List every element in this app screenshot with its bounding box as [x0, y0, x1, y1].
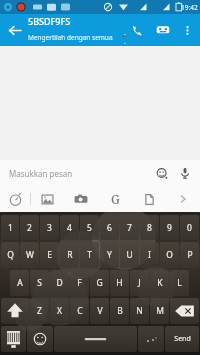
button[interactable]: J — [130, 270, 149, 296]
staticText: 6 — [107, 222, 112, 234]
button[interactable]: G — [90, 270, 109, 296]
button[interactable]: Y — [100, 242, 119, 268]
button[interactable]: 5BSDF9FS — [28, 15, 124, 46]
button[interactable]: U — [120, 242, 139, 268]
button[interactable]: L — [170, 270, 189, 296]
staticText: G — [96, 277, 103, 289]
button[interactable]: E — [40, 242, 59, 268]
staticText: B — [117, 305, 123, 317]
button[interactable]: N — [130, 298, 149, 324]
button[interactable]: 7 — [120, 215, 139, 240]
staticText: H — [116, 277, 123, 289]
staticText: 9 — [167, 222, 172, 234]
staticText: 5 — [87, 222, 92, 234]
button[interactable]: T — [80, 242, 99, 268]
button[interactable]: H — [110, 270, 129, 296]
button[interactable]: Gallery — [31, 186, 64, 212]
button[interactable]: Backspace — [170, 298, 199, 324]
staticText: U — [126, 249, 133, 261]
staticText: F — [77, 277, 82, 289]
staticText: N — [136, 305, 143, 317]
staticText: 0 — [187, 222, 192, 234]
staticText: O — [166, 249, 173, 261]
button[interactable]: Emoji — [27, 326, 53, 352]
button[interactable]: X — [50, 298, 69, 324]
staticText: 5BSDF9FS — [28, 15, 71, 27]
button[interactable]: S — [30, 270, 49, 296]
button[interactable]: Call — [124, 17, 150, 43]
staticText: D — [56, 277, 63, 289]
button[interactable]: P — [180, 242, 199, 268]
button[interactable]: 4 — [60, 215, 79, 240]
staticText: R — [67, 249, 73, 261]
button[interactable]: 8 — [140, 215, 159, 240]
button[interactable]: Shift — [1, 298, 29, 324]
button[interactable]: F — [70, 270, 89, 296]
staticText: Q — [7, 249, 14, 261]
staticText: J — [138, 277, 141, 289]
button[interactable]: Camera — [64, 186, 98, 212]
button[interactable]: R — [60, 242, 79, 268]
staticText: Mengertilah dengan semua ini... — [28, 33, 124, 42]
button[interactable]: 5 — [80, 215, 99, 240]
button[interactable]: Period — [138, 326, 164, 352]
button[interactable]: 2 — [20, 215, 39, 240]
staticText: I — [148, 249, 151, 261]
button[interactable]: Back — [0, 16, 28, 44]
button[interactable]: Masukkan pesan — [0, 160, 200, 186]
button[interactable]: 3 — [40, 215, 59, 240]
staticText: C — [77, 305, 83, 317]
button[interactable]: Space — [54, 326, 137, 352]
staticText: 8 — [147, 222, 152, 234]
staticText: 7 — [127, 222, 132, 234]
staticText: W — [26, 249, 34, 261]
staticText: S — [37, 277, 42, 289]
staticText: Z — [37, 305, 42, 317]
staticText: P — [187, 249, 193, 261]
staticText: L — [177, 277, 182, 289]
staticText: 4 — [67, 222, 72, 234]
button[interactable]: Document — [132, 186, 166, 212]
button[interactable]: More — [166, 186, 200, 212]
button[interactable]: 6 — [100, 215, 119, 240]
button[interactable]: Symbols — [1, 326, 26, 352]
staticText: 1 — [8, 222, 13, 234]
button[interactable]: B — [110, 298, 129, 324]
button[interactable]: Voice message — [173, 161, 197, 185]
staticText: 19:42 — [181, 3, 198, 12]
button[interactable]: W — [20, 242, 39, 268]
staticText: G — [111, 191, 120, 207]
staticText: K — [157, 277, 163, 289]
staticText: 2 — [27, 222, 32, 234]
staticText: M — [156, 305, 164, 317]
staticText: Masukkan pesan — [9, 168, 151, 179]
button[interactable]: M — [150, 298, 169, 324]
staticText: E — [47, 249, 52, 261]
button[interactable]: 9 — [160, 215, 179, 240]
staticText: V — [97, 305, 103, 317]
button[interactable]: Video call — [150, 17, 176, 43]
button[interactable]: A — [10, 270, 29, 296]
button[interactable]: D — [50, 270, 69, 296]
button[interactable]: Send — [165, 326, 199, 352]
button[interactable]: I — [140, 242, 159, 268]
staticText: X — [57, 305, 62, 317]
staticText: Send — [174, 334, 191, 344]
staticText: 3 — [47, 222, 52, 234]
button[interactable]: Google search — [98, 186, 132, 212]
button[interactable]: V — [90, 298, 109, 324]
button[interactable]: Q — [1, 242, 19, 268]
button[interactable]: More options — [176, 19, 198, 41]
button[interactable]: Timer — [0, 186, 30, 212]
button[interactable]: O — [160, 242, 179, 268]
staticText: Y — [107, 249, 112, 261]
button[interactable]: 0 — [180, 215, 199, 240]
button[interactable]: K — [150, 270, 169, 296]
staticText: A — [17, 277, 23, 289]
button[interactable]: C — [70, 298, 89, 324]
staticText: T — [87, 249, 92, 261]
button[interactable]: Emoji — [151, 162, 173, 184]
button[interactable]: Z — [30, 298, 49, 324]
button[interactable]: 1 — [1, 215, 19, 240]
